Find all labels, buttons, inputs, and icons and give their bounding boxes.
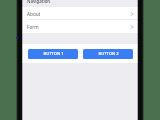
button[interactable]: BUTTON 1 xyxy=(28,49,78,59)
other: Open About xyxy=(131,12,133,16)
staticText: BUTTON 1 xyxy=(43,51,64,57)
button[interactable]: BUTTON 2 xyxy=(83,49,133,59)
button[interactable]: About xyxy=(22,7,138,20)
staticText: BUTTON 2 xyxy=(98,51,119,57)
staticText: Navigation xyxy=(27,0,51,4)
button[interactable]: Form xyxy=(22,20,138,33)
staticText: Form xyxy=(27,24,39,30)
other: Open Form xyxy=(131,25,133,29)
staticText: About xyxy=(27,11,41,17)
